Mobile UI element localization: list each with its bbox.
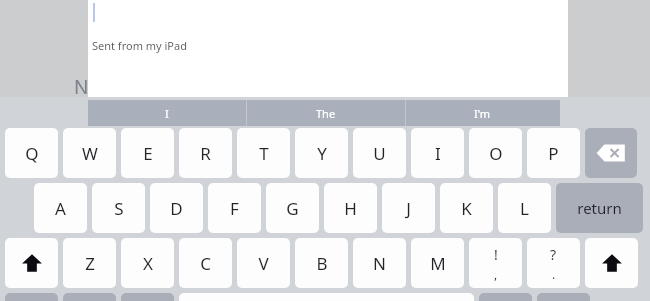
button[interactable]: S (92, 183, 145, 233)
button[interactable]: C (179, 238, 232, 288)
button[interactable]: Backspace (585, 128, 637, 178)
staticText: K (461, 197, 472, 220)
button[interactable]: P (527, 128, 580, 178)
staticText: M (430, 252, 446, 275)
button[interactable]: B (295, 238, 348, 288)
staticText: Q (25, 142, 39, 165)
button[interactable]: I (411, 128, 464, 178)
button[interactable]: X (121, 238, 174, 288)
staticText: N (74, 74, 89, 100)
button[interactable]: W (63, 128, 116, 178)
staticText: H (344, 197, 357, 220)
staticText: R (200, 142, 211, 165)
staticText: The (316, 106, 336, 121)
button[interactable]: I'm (406, 100, 559, 126)
staticText: ? (550, 245, 557, 264)
button[interactable]: V (237, 238, 290, 288)
staticText: C (200, 252, 211, 275)
staticText: A (55, 197, 66, 220)
staticText: V (258, 252, 269, 275)
button[interactable]: ? (527, 238, 580, 288)
staticText: B (316, 252, 328, 275)
staticText: W (82, 142, 98, 165)
staticText: Sent from my iPad (92, 38, 187, 53)
button[interactable]: G (266, 183, 319, 233)
button[interactable]: D (150, 183, 203, 233)
button[interactable]: Z (63, 238, 116, 288)
staticText: U (373, 142, 386, 165)
button[interactable]: L (498, 183, 551, 233)
button[interactable]: M (411, 238, 464, 288)
button[interactable]: R (179, 128, 232, 178)
button[interactable]: Shift (585, 238, 638, 288)
staticText: N (373, 252, 386, 275)
staticText: G (286, 197, 299, 220)
staticText: F (230, 197, 239, 220)
button[interactable]: I (88, 100, 246, 126)
button[interactable]: Q (5, 128, 58, 178)
staticText: L (520, 197, 529, 220)
staticText: I (165, 106, 169, 121)
button[interactable]: Numbers (5, 293, 58, 301)
button[interactable]: return (556, 183, 643, 233)
staticText: S (114, 197, 124, 220)
staticText: D (170, 197, 183, 220)
button[interactable]: Y (295, 128, 348, 178)
button[interactable]: Microphone (121, 293, 174, 301)
button[interactable]: O (469, 128, 522, 178)
staticText: I'm (474, 106, 491, 121)
staticText: . (552, 266, 556, 282)
staticText: Y (317, 142, 327, 165)
button[interactable]: T (237, 128, 290, 178)
staticText: Z (85, 252, 95, 275)
button[interactable]: E (121, 128, 174, 178)
staticText: , (494, 266, 498, 282)
staticText: ! (494, 245, 498, 264)
staticText: I (435, 142, 441, 165)
staticText: J (406, 197, 411, 220)
button[interactable]: Numbers (479, 293, 532, 301)
staticText: O (489, 142, 503, 165)
staticText: P (548, 142, 559, 165)
button[interactable]: The (247, 100, 405, 126)
button[interactable]: Hide keyboard (537, 293, 590, 301)
button[interactable]: U (353, 128, 406, 178)
button[interactable]: A (34, 183, 87, 233)
button[interactable]: Emoji (63, 293, 116, 301)
button[interactable]: N (353, 238, 406, 288)
staticText: return (577, 198, 622, 218)
button[interactable]: F (208, 183, 261, 233)
staticText: E (143, 142, 153, 165)
button[interactable]: K (440, 183, 493, 233)
button[interactable]: H (324, 183, 377, 233)
button[interactable]: Shift (5, 238, 58, 288)
staticText: X (143, 252, 153, 275)
button[interactable]: ! (469, 238, 522, 288)
button[interactable]: J (382, 183, 435, 233)
staticText: T (259, 142, 269, 165)
